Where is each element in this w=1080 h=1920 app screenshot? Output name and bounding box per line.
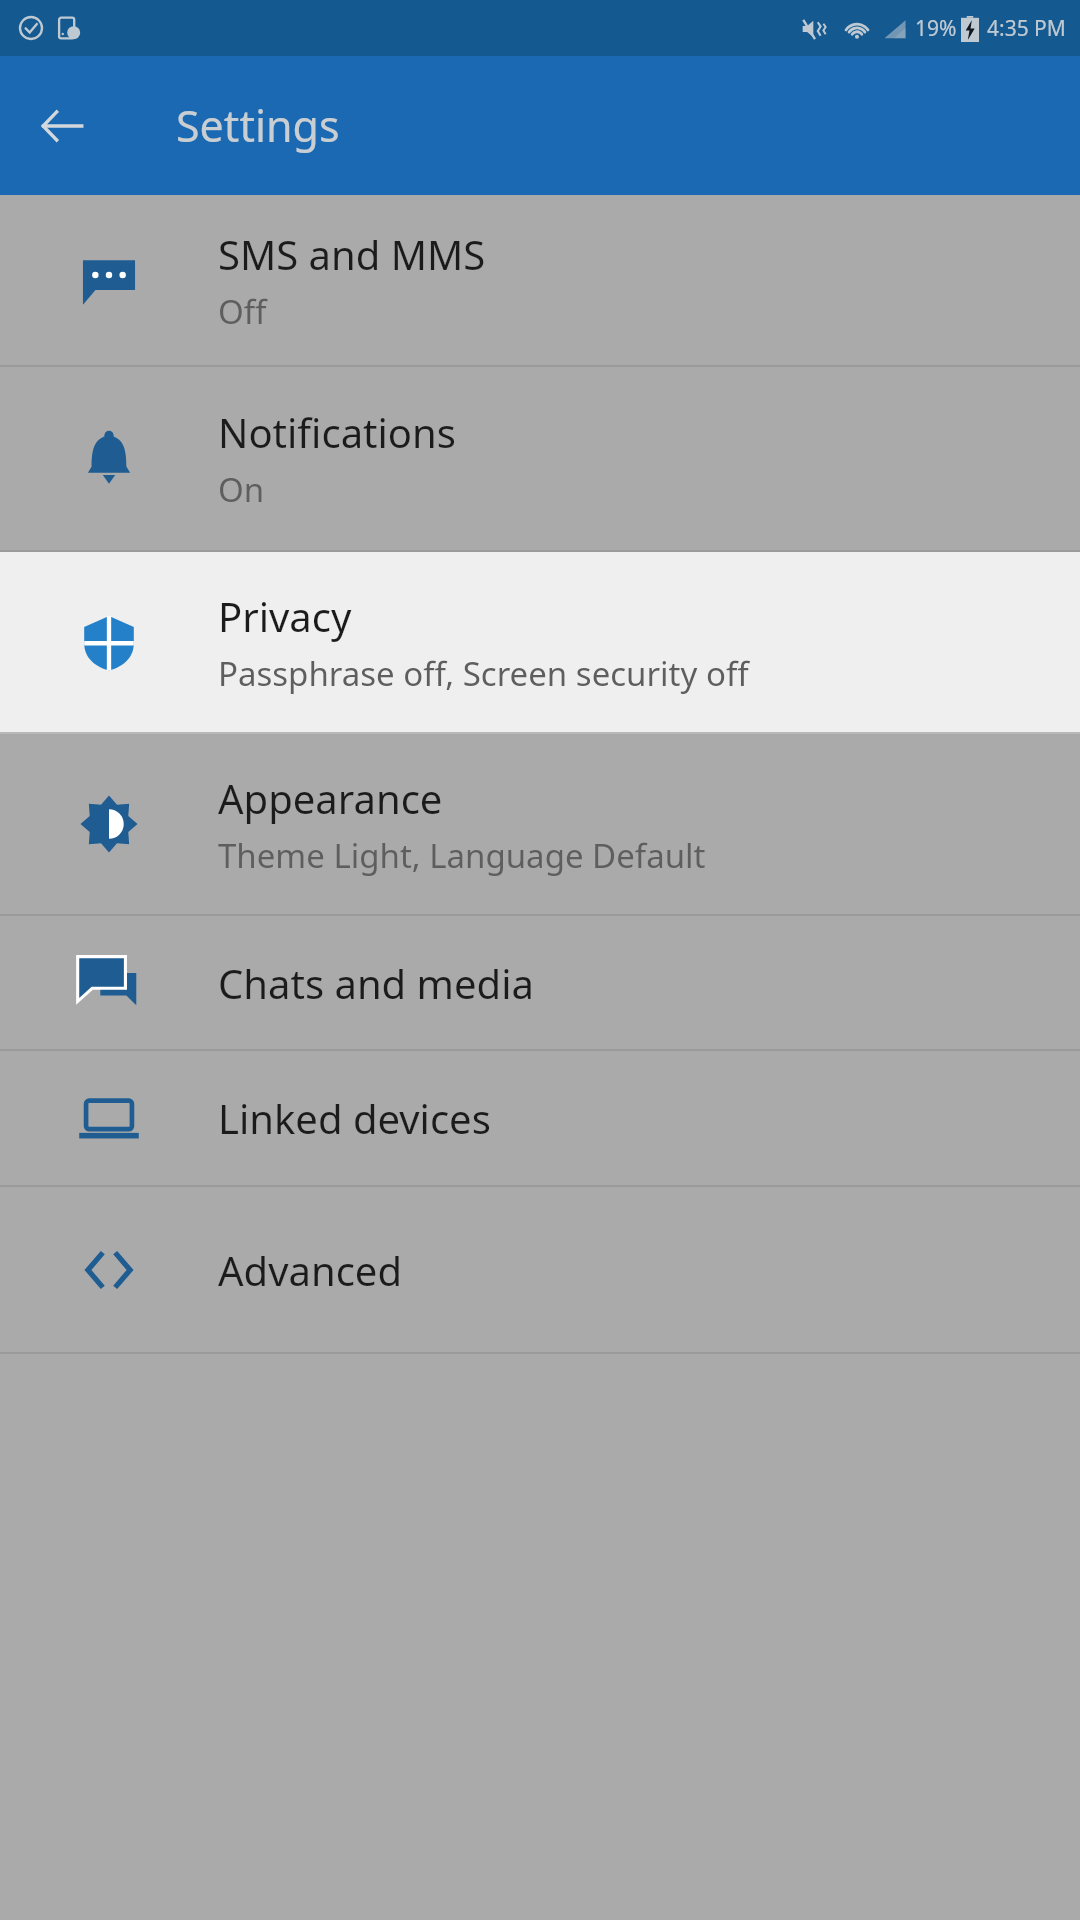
button[interactable]: Appearance xyxy=(0,734,1080,914)
button[interactable]: Back xyxy=(20,84,104,168)
button[interactable]: Advanced xyxy=(0,1187,1080,1352)
staticText: Off xyxy=(218,289,267,334)
staticText: SMS and MMS xyxy=(218,227,486,281)
staticText: Theme Light, Language Default xyxy=(218,833,706,878)
staticText: Chats and media xyxy=(218,956,534,1010)
button[interactable]: Notifications xyxy=(0,367,1080,550)
staticText: Passphrase off, Screen security off xyxy=(218,651,749,696)
staticText: Settings xyxy=(176,96,340,155)
button[interactable]: SMS and MMS xyxy=(0,195,1080,365)
staticText: 4:35 PM xyxy=(987,14,1066,43)
staticText: Privacy xyxy=(218,589,352,643)
staticText: Appearance xyxy=(218,771,443,825)
staticText: Linked devices xyxy=(218,1091,491,1145)
staticText: Notifications xyxy=(218,405,456,459)
staticText: On xyxy=(218,467,265,512)
button[interactable]: Privacy xyxy=(0,552,1080,732)
button[interactable]: Linked devices xyxy=(0,1051,1080,1185)
button[interactable]: Chats and media xyxy=(0,916,1080,1049)
staticText: Advanced xyxy=(218,1243,402,1297)
staticText: 19% xyxy=(915,14,957,43)
